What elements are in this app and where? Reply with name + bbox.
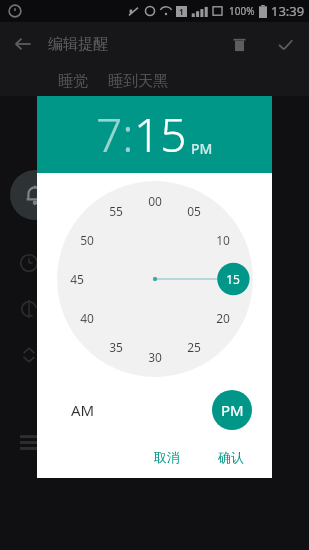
button[interactable]: 7: xyxy=(96,103,134,166)
staticText: 15 xyxy=(226,271,240,287)
button[interactable]: 确认 xyxy=(208,443,254,471)
staticText: 100% xyxy=(229,4,255,18)
staticText: 45 xyxy=(70,271,84,287)
staticText: 10 xyxy=(216,232,230,248)
staticText: 50 xyxy=(80,232,94,248)
staticText: 13:39 xyxy=(271,2,305,20)
button[interactable]: Back xyxy=(8,29,38,59)
staticText: 30 xyxy=(148,349,162,365)
button[interactable]: 15 xyxy=(134,103,187,166)
staticText: 15 xyxy=(134,103,187,166)
staticText: PM xyxy=(191,139,213,158)
staticText: 25 xyxy=(187,339,201,355)
staticText: 编辑提醒 xyxy=(48,35,108,54)
staticText: 55 xyxy=(109,203,123,219)
staticText: 确认 xyxy=(218,449,244,465)
staticText: 20 xyxy=(216,310,230,326)
staticText: 7: xyxy=(96,103,134,166)
button[interactable]: 00 xyxy=(57,181,253,377)
staticText: 35 xyxy=(109,339,123,355)
button[interactable]: Delete xyxy=(225,30,253,58)
staticText: 睡觉 xyxy=(58,72,88,91)
button[interactable]: Confirm xyxy=(271,30,299,58)
button[interactable]: 取消 xyxy=(144,443,190,471)
button[interactable]: 睡到天黑 xyxy=(108,72,168,91)
button[interactable]: PM xyxy=(212,390,252,430)
staticText: 1 xyxy=(179,6,184,17)
staticText: 05 xyxy=(187,203,201,219)
button[interactable]: 睡觉 xyxy=(58,72,88,91)
staticText: 00 xyxy=(148,193,162,209)
staticText: 取消 xyxy=(154,449,180,465)
button[interactable]: Notification xyxy=(10,170,60,220)
staticText: AM xyxy=(71,400,95,420)
button[interactable]: AM xyxy=(63,390,103,430)
staticText: PM xyxy=(221,400,244,420)
staticText: 睡到天黑 xyxy=(108,72,168,91)
staticText: 40 xyxy=(80,310,94,326)
